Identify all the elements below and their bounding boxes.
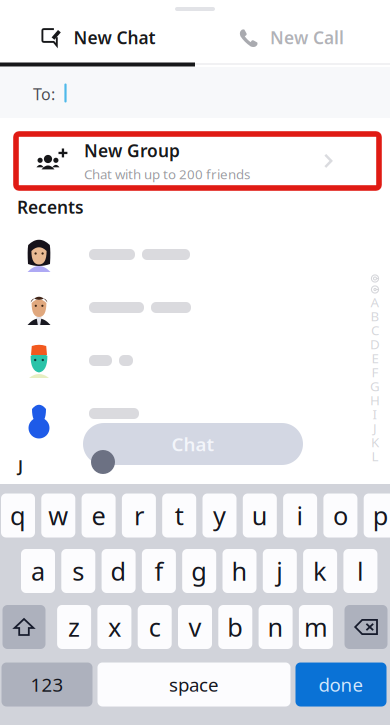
- staticText: New Chat: [73, 26, 155, 49]
- button[interactable]: j: [263, 549, 297, 593]
- button[interactable]: f: [142, 549, 176, 593]
- staticText: A: [370, 293, 379, 311]
- button[interactable]: u: [243, 493, 277, 537]
- button[interactable]: [0, 334, 390, 387]
- button[interactable]: g: [182, 549, 216, 593]
- staticText: B: [370, 307, 379, 325]
- staticText: j: [276, 554, 283, 588]
- staticText: d: [111, 554, 127, 588]
- button[interactable]: [0, 387, 390, 440]
- staticText: To:: [33, 83, 55, 105]
- staticText: D: [370, 335, 380, 353]
- staticText: l: [357, 554, 364, 588]
- button[interactable]: e: [82, 493, 116, 537]
- staticText: J: [373, 419, 377, 437]
- staticText: a: [31, 554, 45, 588]
- staticText: C: [371, 321, 379, 339]
- staticText: u: [252, 499, 268, 532]
- staticText: z: [68, 610, 80, 644]
- button[interactable]: c: [138, 605, 172, 649]
- button[interactable]: done: [295, 662, 386, 706]
- staticText: o: [333, 499, 348, 532]
- staticText: w: [48, 499, 68, 532]
- staticText: t: [175, 499, 184, 532]
- button[interactable]: q: [1, 493, 35, 537]
- staticText: New Call: [270, 26, 344, 49]
- button[interactable]: space: [97, 662, 290, 706]
- staticText: s: [72, 554, 84, 588]
- staticText: n: [268, 610, 284, 644]
- button[interactable]: Delete: [344, 605, 387, 649]
- staticText: k: [313, 554, 327, 588]
- button[interactable]: New Group: [16, 134, 379, 188]
- staticText: g: [191, 554, 207, 588]
- button[interactable]: a: [21, 549, 55, 593]
- staticText: done: [318, 672, 363, 697]
- staticText: I: [372, 405, 377, 423]
- staticText: F: [371, 363, 378, 381]
- button[interactable]: s: [61, 549, 95, 593]
- button[interactable]: [0, 228, 390, 281]
- staticText: K: [371, 433, 379, 451]
- staticText: 123: [30, 672, 63, 697]
- staticText: Recents: [17, 195, 84, 218]
- staticText: E: [371, 349, 378, 367]
- button[interactable]: z: [57, 605, 91, 649]
- staticText: Chat with up to 200 friends: [84, 165, 250, 183]
- button[interactable]: w: [41, 493, 75, 537]
- staticText: v: [188, 610, 201, 644]
- staticText: J: [18, 455, 23, 477]
- button[interactable]: t: [162, 493, 196, 537]
- staticText: y: [213, 499, 226, 532]
- staticText: e: [92, 499, 106, 532]
- staticText: f: [154, 554, 163, 588]
- staticText: L: [371, 447, 378, 465]
- button[interactable]: p: [364, 493, 390, 537]
- button[interactable]: m: [299, 605, 333, 649]
- staticText: p: [373, 499, 389, 532]
- button[interactable]: r: [122, 493, 156, 537]
- button[interactable]: [0, 281, 390, 334]
- staticText: H: [370, 391, 380, 409]
- staticText: c: [149, 610, 161, 644]
- staticText: q: [10, 499, 26, 532]
- button[interactable]: x: [97, 605, 131, 649]
- staticText: r: [134, 499, 144, 532]
- staticText: b: [227, 610, 243, 644]
- staticText: h: [231, 554, 247, 588]
- button[interactable]: l: [343, 549, 377, 593]
- button[interactable]: New Call: [193, 16, 388, 58]
- staticText: New Group: [84, 139, 180, 162]
- staticText: x: [108, 610, 121, 644]
- button[interactable]: Shift: [2, 605, 45, 649]
- button[interactable]: o: [323, 493, 357, 537]
- button[interactable]: k: [303, 549, 337, 593]
- staticText: space: [169, 672, 219, 697]
- button[interactable]: New Chat: [0, 16, 195, 58]
- button[interactable]: h: [222, 549, 256, 593]
- staticText: Chat: [171, 432, 214, 456]
- staticText: m: [304, 610, 328, 644]
- button[interactable]: b: [218, 605, 252, 649]
- staticText: G: [370, 377, 380, 395]
- button[interactable]: v: [178, 605, 212, 649]
- button[interactable]: 123: [1, 662, 92, 706]
- button[interactable]: i: [283, 493, 317, 537]
- button[interactable]: n: [259, 605, 293, 649]
- button[interactable]: y: [202, 493, 236, 537]
- button[interactable]: d: [102, 549, 136, 593]
- staticText: i: [297, 499, 304, 532]
